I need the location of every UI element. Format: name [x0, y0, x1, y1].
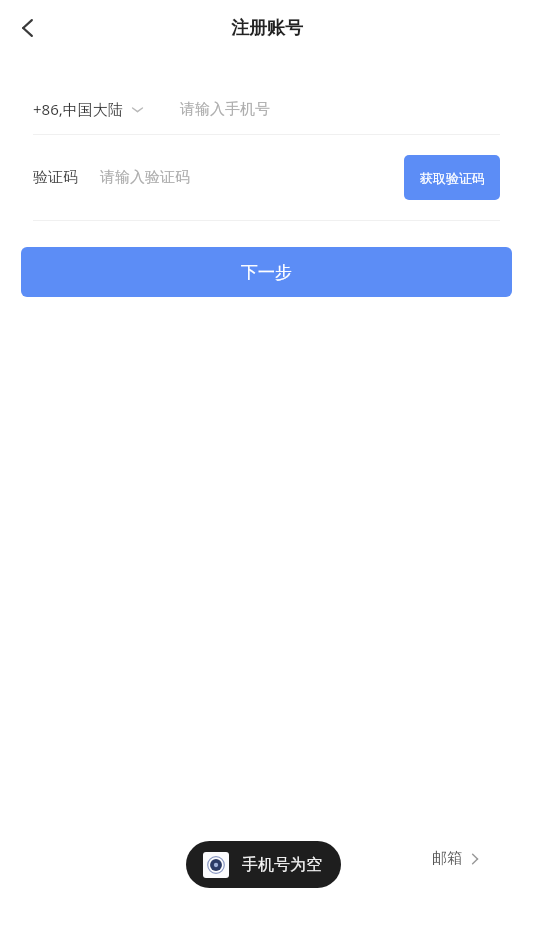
- button[interactable]: 请输入验证码: [100, 168, 404, 187]
- button[interactable]: 下一步: [21, 247, 512, 297]
- staticText: 请输入手机号: [180, 100, 270, 119]
- staticText: +86,中国大陆: [33, 99, 123, 119]
- button[interactable]: +86,中国大陆: [33, 99, 144, 119]
- staticText: 请输入验证码: [100, 168, 190, 187]
- staticText: 下一步: [241, 262, 292, 283]
- button[interactable]: 请输入手机号: [180, 100, 500, 119]
- staticText: 验证码: [33, 168, 78, 187]
- button[interactable]: 获取验证码: [404, 155, 500, 200]
- button[interactable]: 邮箱: [432, 849, 482, 868]
- button[interactable]: Back: [4, 4, 52, 52]
- staticText: 手机号为空: [242, 855, 322, 875]
- staticText: 获取验证码: [420, 170, 485, 186]
- staticText: 邮箱: [432, 849, 462, 868]
- staticText: 注册账号: [231, 17, 303, 40]
